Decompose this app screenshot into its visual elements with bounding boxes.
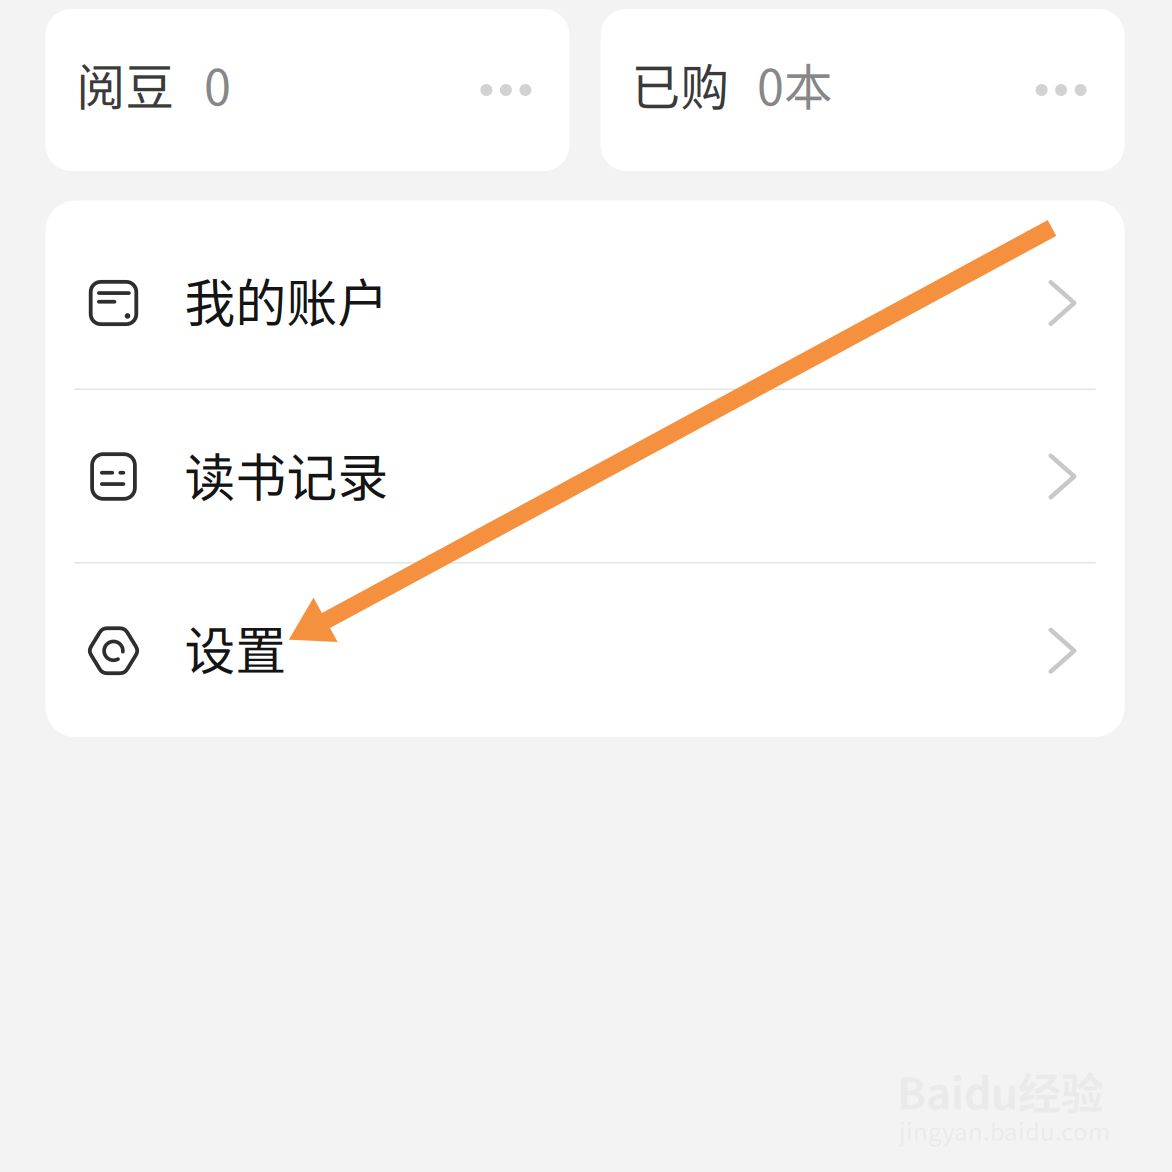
staticText: 0本 bbox=[757, 49, 833, 119]
staticText: 设置 bbox=[184, 611, 286, 684]
staticText: Baidu经验 bbox=[897, 1060, 1104, 1122]
button[interactable]: 读书记录 bbox=[45, 390, 1124, 562]
button[interactable]: 设置 bbox=[45, 563, 1124, 737]
staticText: 读书记录 bbox=[184, 438, 388, 511]
button[interactable]: 我的账户 bbox=[45, 214, 1124, 388]
staticText: 我的账户 bbox=[184, 263, 388, 337]
button[interactable]: 阅豆 bbox=[45, 9, 569, 171]
staticText: 阅豆 bbox=[76, 49, 174, 119]
staticText: 已购 bbox=[632, 49, 730, 119]
staticText: 0 bbox=[204, 49, 231, 119]
button[interactable]: 已购 bbox=[601, 9, 1125, 171]
